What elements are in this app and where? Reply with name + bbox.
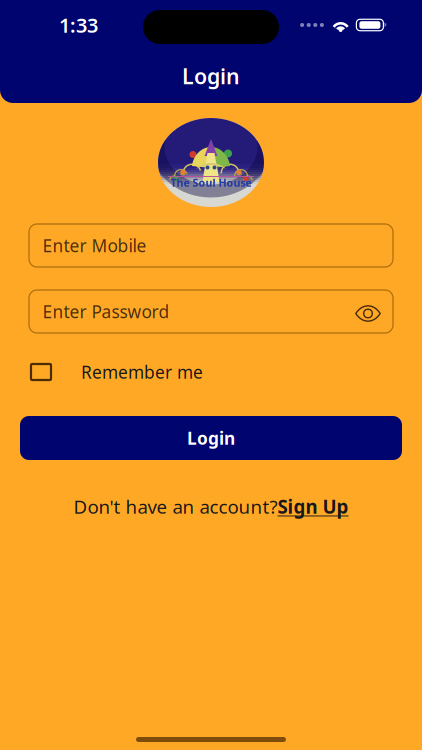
staticText: 1:33 (59, 12, 98, 38)
button[interactable]: Sign Up (277, 494, 348, 519)
staticText: Login (182, 62, 240, 90)
staticText: Enter Mobile (42, 234, 146, 257)
button[interactable]: Login (0, 416, 422, 460)
button[interactable]: Remember me (0, 357, 422, 387)
staticText: Don't have an account? (73, 494, 277, 519)
staticText: The Soul House (170, 175, 251, 190)
staticText: Remember me (81, 360, 203, 383)
staticText: Login (187, 426, 235, 449)
staticText: Sign Up (277, 494, 348, 519)
staticText: Enter Password (42, 300, 169, 323)
